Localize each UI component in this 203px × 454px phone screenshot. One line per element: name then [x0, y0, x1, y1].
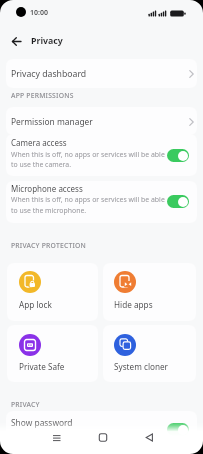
button[interactable] — [6, 411, 197, 454]
staticText: 10:00 — [30, 8, 48, 18]
staticText: Privacy dashboard — [11, 68, 87, 80]
staticText: System cloner — [114, 361, 169, 372]
button[interactable] — [167, 195, 189, 208]
button[interactable] — [103, 263, 196, 321]
button[interactable] — [8, 34, 24, 50]
staticText: PRIVACY — [11, 400, 40, 409]
button[interactable] — [7, 263, 98, 321]
button[interactable] — [167, 149, 189, 162]
staticText: App lock — [19, 299, 52, 310]
button[interactable] — [6, 59, 197, 88]
staticText: Show password — [11, 417, 73, 428]
button[interactable] — [6, 107, 197, 135]
staticText: When this is off, no apps or services wi… — [11, 150, 165, 159]
button[interactable] — [7, 325, 98, 382]
staticText: Microphone access — [11, 183, 83, 194]
button[interactable] — [48, 430, 64, 446]
button[interactable] — [141, 430, 157, 446]
staticText: Privacy — [31, 35, 63, 47]
button[interactable] — [114, 271, 136, 293]
button[interactable] — [6, 134, 197, 176]
button[interactable] — [19, 334, 41, 356]
staticText: Camera access — [11, 137, 67, 148]
staticText: APP PERMISSIONS — [11, 91, 74, 100]
staticText: PRIVACY PROTECTION — [11, 241, 87, 250]
button[interactable] — [95, 430, 111, 446]
button[interactable] — [19, 271, 41, 293]
button[interactable] — [114, 334, 136, 356]
button[interactable] — [103, 325, 196, 382]
staticText: Permission manager — [11, 116, 93, 127]
staticText: When this is off, no apps or services wi… — [11, 195, 165, 204]
button[interactable] — [6, 181, 197, 223]
staticText: Hide apps — [114, 299, 153, 310]
staticText: to use the microphone. — [11, 206, 87, 215]
staticText: Private Safe — [19, 361, 65, 372]
staticText: to use the camera. — [11, 160, 72, 169]
button[interactable] — [167, 423, 189, 436]
